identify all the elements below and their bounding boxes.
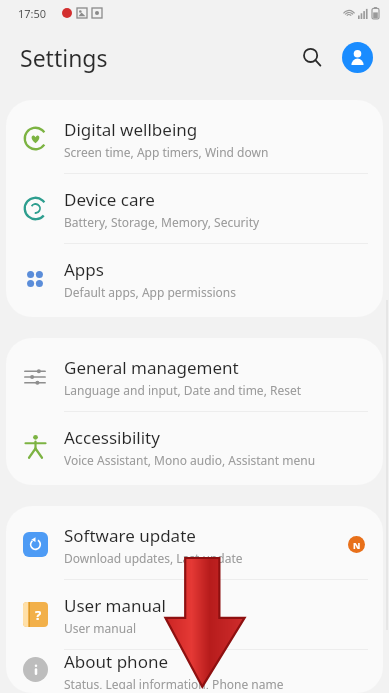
button[interactable]: Software update — [6, 510, 383, 579]
button[interactable]: Digital wellbeing — [6, 104, 383, 173]
button[interactable]: About phone — [6, 650, 383, 689]
button[interactable]: ? — [6, 580, 383, 649]
staticText: Accessibility — [64, 426, 160, 449]
staticText: Language and input, Date and time, Reset — [64, 382, 302, 398]
staticText: Settings — [20, 42, 108, 73]
staticText: User manual — [64, 594, 166, 617]
staticText: Device care — [64, 188, 155, 211]
staticText: Default apps, App permissions — [64, 284, 236, 300]
staticText: Battery, Storage, Memory, Security — [64, 214, 260, 230]
staticText: N — [353, 539, 361, 551]
staticText: Screen time, App timers, Wind down — [64, 144, 269, 160]
button[interactable]: Device care — [6, 174, 383, 243]
staticText: General management — [64, 356, 239, 379]
staticText: 17:50 — [18, 6, 47, 21]
button[interactable]: Accessibility — [6, 412, 383, 481]
button[interactable]: Apps — [6, 244, 383, 313]
staticText: Apps — [64, 258, 104, 281]
staticText: Status, Legal information, Phone name — [64, 676, 284, 689]
staticText: Download updates, Last update — [64, 550, 243, 566]
button[interactable]: General management — [6, 342, 383, 411]
staticText: Software update — [64, 524, 196, 547]
staticText: User manual — [64, 620, 136, 636]
staticText: Digital wellbeing — [64, 118, 198, 141]
staticText: Voice Assistant, Mono audio, Assistant m… — [64, 452, 316, 468]
button[interactable]: Search — [293, 38, 331, 76]
staticText: ? — [35, 606, 42, 624]
staticText: About phone — [64, 650, 169, 673]
button[interactable]: Account — [338, 38, 376, 76]
